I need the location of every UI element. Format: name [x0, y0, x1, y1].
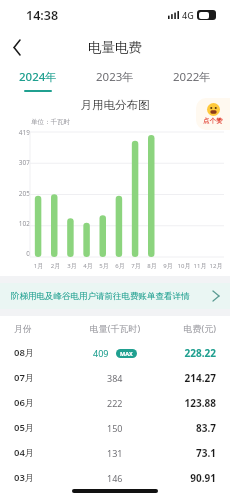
button[interactable]: 2023年	[76, 64, 153, 96]
staticText: 月份	[14, 323, 75, 334]
staticText: 03月	[14, 471, 75, 484]
staticText: 205	[18, 189, 30, 197]
staticText: 131	[107, 447, 123, 459]
button[interactable]: 06月	[0, 390, 230, 415]
staticText: 3月	[64, 262, 80, 270]
button[interactable]: 点个赞	[196, 98, 230, 130]
staticText: 2月	[47, 262, 64, 270]
staticText: 单位：千瓦时	[31, 118, 70, 126]
staticText: 12月	[208, 262, 224, 270]
staticText: 419	[18, 128, 30, 136]
staticText: 4月	[80, 262, 96, 270]
staticText: 2024年	[19, 69, 57, 85]
staticText: 123.88	[155, 396, 216, 410]
staticText: 73.1	[155, 446, 216, 460]
staticText: 点个赞	[203, 117, 223, 125]
staticText: 307	[18, 158, 30, 166]
staticText: 14:38	[26, 7, 59, 24]
button[interactable]: 08月	[0, 340, 230, 365]
staticText: 07月	[14, 371, 75, 384]
staticText: 电量电费	[88, 39, 142, 56]
staticText: 4G	[182, 9, 194, 21]
staticText: MAX	[120, 350, 133, 357]
staticText: 11月	[192, 262, 208, 270]
staticText: 228.22	[155, 346, 216, 360]
staticText: 102	[18, 219, 30, 227]
staticText: 7月	[128, 262, 144, 270]
staticText: 04月	[14, 446, 75, 459]
staticText: 150	[107, 422, 123, 434]
button[interactable]: 2024年	[0, 64, 76, 96]
staticText: 电量(千瓦时)	[75, 322, 155, 334]
staticText: 222	[107, 397, 123, 409]
staticText: 06月	[14, 396, 75, 409]
staticText: 05月	[14, 421, 75, 434]
staticText: 5月	[96, 262, 112, 270]
staticText: 214.27	[155, 371, 216, 385]
staticText: 90.91	[155, 471, 216, 485]
staticText: 384	[107, 372, 123, 384]
staticText: 9月	[160, 262, 176, 270]
staticText: 0	[26, 249, 30, 257]
staticText: 2022年	[173, 69, 211, 85]
staticText: 阶梯用电及峰谷电用户请前往电费账单查看详情	[11, 291, 213, 302]
button[interactable]: 阶梯用电及峰谷电用户请前往电费账单查看详情	[0, 283, 230, 309]
staticText: 146	[107, 472, 123, 484]
button[interactable]: Back	[0, 30, 34, 64]
staticText: 电费(元)	[155, 322, 216, 334]
button[interactable]: 05月	[0, 415, 230, 440]
staticText: 1月	[30, 262, 47, 270]
staticText: 409	[93, 347, 109, 359]
staticText: 6月	[112, 262, 128, 270]
staticText: 08月	[14, 346, 75, 359]
staticText: 2023年	[96, 69, 134, 85]
staticText: 8月	[144, 262, 160, 270]
button[interactable]: 04月	[0, 440, 230, 465]
staticText: 83.7	[155, 421, 216, 435]
button[interactable]: 07月	[0, 365, 230, 390]
button[interactable]: 2022年	[153, 64, 230, 96]
button[interactable]: 03月	[0, 465, 230, 490]
staticText: 10月	[176, 262, 192, 270]
staticText: 月用电分布图	[0, 98, 230, 112]
